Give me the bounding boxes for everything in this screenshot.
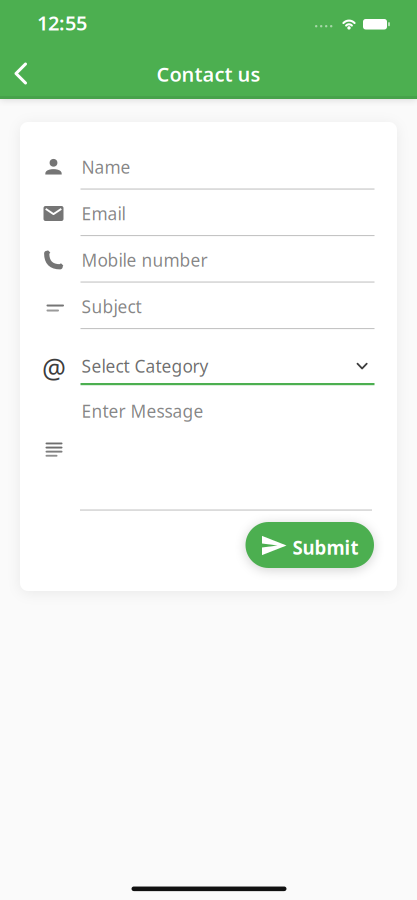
staticText: @: [42, 351, 66, 386]
staticText: Submit: [292, 535, 358, 560]
staticText: Enter Message: [81, 399, 203, 422]
staticText: Subject: [81, 295, 141, 318]
button[interactable]: @: [20, 343, 397, 389]
button[interactable]: Back: [14, 62, 38, 85]
staticText: Email: [81, 202, 125, 225]
staticText: Mobile number: [81, 248, 207, 271]
button[interactable]: Subject: [20, 283, 397, 330]
button[interactable]: Submit: [245, 522, 374, 568]
button[interactable]: Name: [20, 144, 397, 190]
button[interactable]: Email: [20, 190, 397, 237]
button[interactable]: Enter Message: [20, 392, 397, 504]
staticText: 12:55: [37, 9, 87, 36]
button[interactable]: Mobile number: [20, 237, 397, 283]
staticText: Name: [81, 155, 130, 178]
staticText: Contact us: [156, 61, 260, 87]
staticText: Select Category: [81, 354, 208, 377]
